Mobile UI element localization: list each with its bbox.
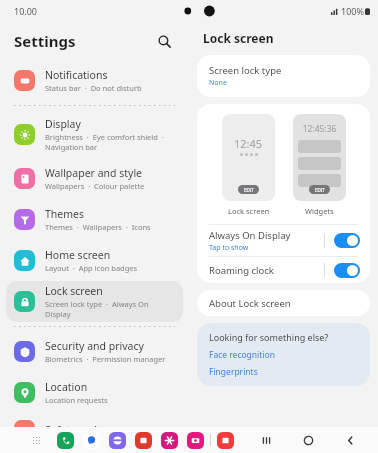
button[interactable] xyxy=(334,233,360,248)
staticText: Location requests xyxy=(45,395,108,405)
button[interactable]: Security and privacy xyxy=(6,331,183,372)
staticText: 12:45:36 xyxy=(298,123,341,135)
button[interactable] xyxy=(334,263,360,278)
button[interactable]: msg xyxy=(83,432,100,449)
staticText: Fingerprints xyxy=(209,366,258,378)
button[interactable]: store xyxy=(135,432,152,449)
staticText: Face recognition xyxy=(209,349,275,361)
staticText: EDIT xyxy=(315,187,325,193)
button[interactable]: Themes xyxy=(6,199,183,240)
button[interactable]: Notifications xyxy=(6,60,183,101)
staticText: Location xyxy=(45,380,88,394)
button[interactable]: 12:45:36 xyxy=(293,114,346,201)
button[interactable]: 12:45 xyxy=(222,114,275,201)
staticText: Status bar · Do not disturb xyxy=(45,83,142,93)
button[interactable]: Home xyxy=(298,430,318,450)
button[interactable]: Roaming clock xyxy=(197,257,370,283)
staticText: Lock screen xyxy=(228,206,270,216)
staticText: Themes xyxy=(45,207,85,221)
button[interactable]: Search xyxy=(151,28,177,54)
staticText: Looking for something else? xyxy=(209,331,329,343)
staticText: 10.00 xyxy=(14,5,38,17)
button[interactable]: Location xyxy=(6,372,183,413)
staticText: Tap to show xyxy=(209,243,249,253)
staticText: EDIT xyxy=(244,187,254,193)
staticText: Screen lock type · Always On Display xyxy=(45,299,175,319)
staticText: 12:45 xyxy=(234,136,263,151)
staticText: Always On Display xyxy=(209,229,291,242)
button[interactable]: Display xyxy=(6,110,183,158)
staticText: About Lock screen xyxy=(209,297,291,310)
staticText: Layout · App icon badges xyxy=(45,263,138,273)
button[interactable]: Fingerprints xyxy=(209,366,258,378)
staticText: Biometrics · Permission manager xyxy=(45,354,166,364)
staticText: Notifications xyxy=(45,68,108,82)
button[interactable]: Home screen xyxy=(6,240,183,281)
button[interactable]: cam xyxy=(187,432,204,449)
button[interactable]: phone xyxy=(57,432,74,449)
staticText: Lock screen xyxy=(203,30,274,46)
staticText: Display xyxy=(45,117,81,131)
button[interactable]: Recents xyxy=(256,430,276,450)
staticText: Settings xyxy=(14,31,76,51)
button[interactable]: internet xyxy=(109,432,126,449)
staticText: Wallpaper and style xyxy=(45,166,143,180)
staticText: Screen lock type xyxy=(209,64,282,77)
button[interactable]: Wallpaper and style xyxy=(6,158,183,199)
staticText: Roaming clock xyxy=(209,264,274,277)
button[interactable]: store xyxy=(217,432,234,449)
button[interactable]: Always On Display xyxy=(197,225,370,256)
staticText: None xyxy=(209,78,227,88)
staticText: 100% xyxy=(341,5,364,17)
button[interactable]: All apps xyxy=(26,430,46,450)
staticText: Home screen xyxy=(45,248,111,262)
button[interactable]: Face recognition xyxy=(209,349,275,361)
staticText: Themes · Wallpapers · Icons xyxy=(45,222,151,232)
staticText: Lock screen xyxy=(45,284,103,298)
staticText: Security and privacy xyxy=(45,339,144,353)
staticText: Safety and emergency xyxy=(45,423,155,437)
button[interactable]: Safety and emergency xyxy=(6,413,183,447)
button[interactable]: Back xyxy=(340,430,360,450)
button[interactable]: kids xyxy=(161,432,178,449)
staticText: Widgets xyxy=(305,206,334,216)
staticText: Wallpapers · Colour palette xyxy=(45,181,145,191)
staticText: Brightness · Eye comfort shield · Naviga… xyxy=(45,132,164,152)
button[interactable]: Screen lock type xyxy=(197,55,370,97)
button[interactable]: Lock screen xyxy=(6,281,183,322)
button[interactable]: About Lock screen xyxy=(197,290,370,316)
